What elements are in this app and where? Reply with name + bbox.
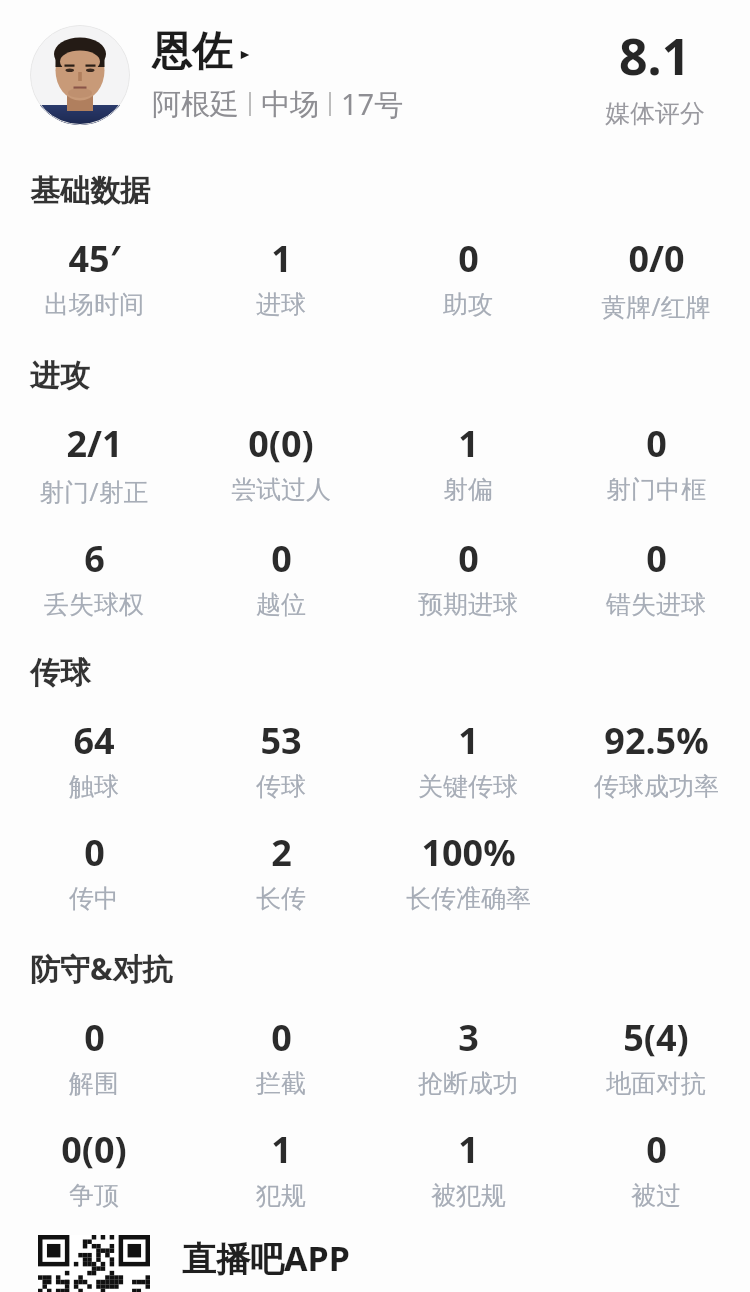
staticText: 被过 [631, 1180, 681, 1211]
button[interactable]: 0/0 [562, 234, 750, 323]
staticText: 92.5% [604, 716, 709, 765]
button[interactable]: 1 [187, 1125, 374, 1211]
staticText: 45′ [68, 234, 121, 283]
staticText: 基础数据 [30, 172, 150, 210]
staticText: 1 [458, 1125, 479, 1174]
staticText: 100% [421, 828, 516, 877]
staticText: 0 [458, 234, 479, 283]
staticText: 0(0) [248, 419, 314, 468]
staticText: 0 [84, 1013, 105, 1062]
staticText: 传中 [69, 883, 119, 914]
staticText: 传球 [30, 654, 90, 692]
button[interactable]: 0 [187, 534, 374, 620]
other: 二维码 [38, 1235, 150, 1292]
button[interactable]: 2/1 [0, 419, 187, 508]
button[interactable]: 100% [374, 828, 562, 914]
staticText: 进球 [256, 289, 306, 320]
button[interactable]: 0 [0, 1013, 187, 1099]
button[interactable]: 0 [562, 419, 750, 505]
staticText: 0 [271, 534, 292, 583]
button[interactable]: 1 [374, 716, 562, 802]
staticText: 射偏 [443, 474, 493, 505]
button[interactable]: 2 [187, 828, 374, 914]
staticText: 2 [271, 828, 292, 877]
button[interactable]: 0(0) [0, 1125, 187, 1211]
staticText: 防守&对抗 [30, 948, 173, 989]
staticText: 关键传球 [418, 771, 518, 802]
staticText: 1 [271, 1125, 292, 1174]
staticText: 3 [458, 1013, 479, 1062]
button[interactable]: 0(0) [187, 419, 374, 505]
button[interactable]: 64 [0, 716, 187, 802]
button[interactable]: 恩佐 [152, 26, 560, 124]
staticText: 0(0) [61, 1125, 127, 1174]
staticText: 6 [84, 534, 105, 583]
staticText: 拦截 [256, 1068, 306, 1099]
staticText: 0 [646, 419, 667, 468]
staticText: 犯规 [256, 1180, 306, 1211]
staticText: 5(4) [623, 1013, 689, 1062]
staticText: 丢失球权 [44, 589, 144, 620]
staticText: 抢断成功 [418, 1068, 518, 1099]
staticText: 尝试过人 [231, 474, 331, 505]
staticText: 0 [646, 534, 667, 583]
staticText: 预期进球 [418, 589, 518, 620]
staticText: 0 [458, 534, 479, 583]
staticText: 被犯规 [431, 1180, 506, 1211]
staticText: 地面对抗 [606, 1068, 706, 1099]
button[interactable]: 1 [187, 234, 374, 320]
button[interactable]: 0 [562, 534, 750, 620]
staticText: 长传 [256, 883, 306, 914]
staticText: 射门中框 [606, 474, 706, 505]
button[interactable]: 0 [374, 534, 562, 620]
staticText: 直播吧APP [182, 1235, 350, 1281]
staticText: 射门/射正 [39, 474, 149, 508]
button[interactable]: 0 [0, 828, 187, 914]
staticText: 媒体评分 [605, 98, 705, 129]
staticText: 传球 [256, 771, 306, 802]
staticText: 黄牌/红牌 [601, 289, 711, 323]
staticText: 64 [73, 716, 115, 765]
staticText: 0/0 [628, 234, 685, 283]
button[interactable]: 8.1 [560, 22, 750, 129]
button[interactable]: 1 [374, 1125, 562, 1211]
staticText: 53 [260, 716, 302, 765]
staticText: 1 [458, 419, 479, 468]
staticText: 恩佐 [152, 26, 232, 76]
button[interactable]: 二维码 [0, 1235, 750, 1292]
staticText: 0 [646, 1125, 667, 1174]
staticText: 进攻 [30, 357, 90, 395]
staticText: 出场时间 [44, 289, 144, 320]
staticText: 0 [84, 828, 105, 877]
button[interactable]: 0 [374, 234, 562, 320]
staticText: 传球成功率 [594, 771, 719, 802]
button[interactable]: 45′ [0, 234, 187, 320]
button[interactable]: 6 [0, 534, 187, 620]
staticText: 触球 [69, 771, 119, 802]
staticText: 0 [271, 1013, 292, 1062]
button[interactable]: 球员头像 [30, 25, 130, 125]
button[interactable]: 3 [374, 1013, 562, 1099]
button[interactable]: 5(4) [562, 1013, 750, 1099]
staticText: 长传准确率 [406, 883, 531, 914]
staticText: 争顶 [69, 1180, 119, 1211]
button[interactable]: 0 [562, 1125, 750, 1211]
staticText: 中场 [261, 86, 319, 123]
staticText: 助攻 [443, 289, 493, 320]
button[interactable]: 1 [374, 419, 562, 505]
button[interactable]: 0 [187, 1013, 374, 1099]
staticText: 2/1 [66, 419, 123, 468]
staticText: 阿根廷 [152, 86, 239, 123]
button[interactable]: 53 [187, 716, 374, 802]
staticText: 8.1 [619, 22, 691, 90]
staticText: 越位 [256, 589, 306, 620]
staticText: 解围 [69, 1068, 119, 1099]
button[interactable]: 92.5% [562, 716, 750, 802]
staticText: 错失进球 [606, 589, 706, 620]
staticText: 1 [458, 716, 479, 765]
staticText: 17号 [341, 84, 404, 124]
staticText: 1 [271, 234, 292, 283]
